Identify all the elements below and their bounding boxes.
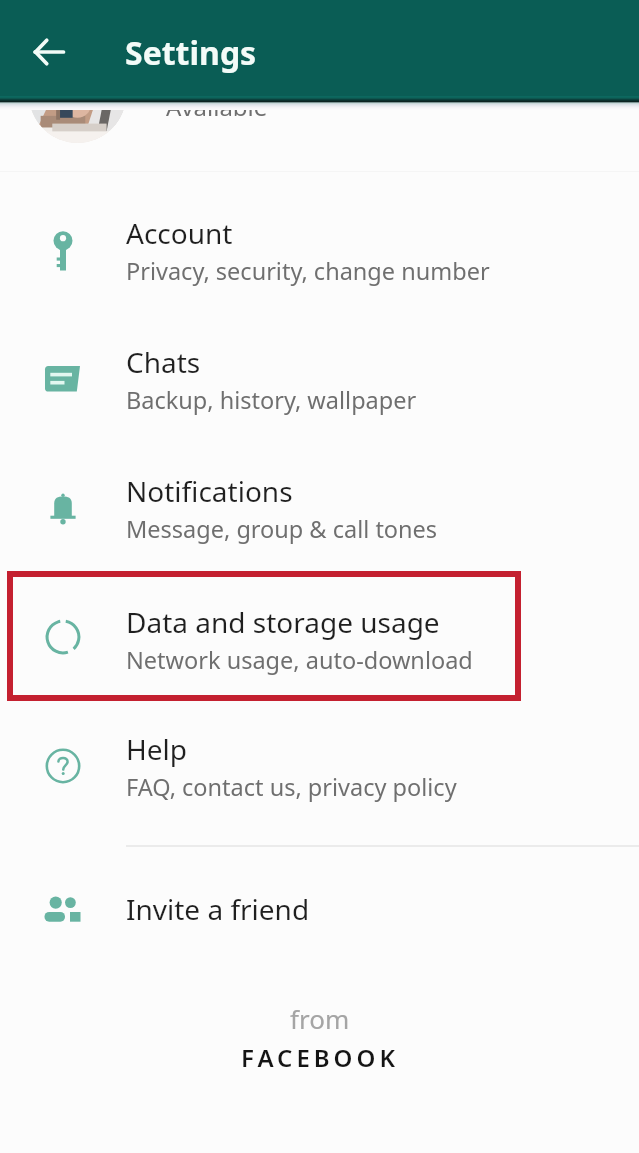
staticText: Available <box>166 90 268 123</box>
staticText: from <box>290 1001 350 1036</box>
staticText: Backup, history, wallpaper <box>126 384 417 416</box>
staticText: Privacy, security, change number <box>126 255 490 287</box>
staticText: FAQ, contact us, privacy policy <box>126 771 457 803</box>
staticText: Settings <box>125 31 257 75</box>
staticText: Message, group & call tones <box>126 513 438 545</box>
button[interactable]: Invite a friend <box>0 866 639 950</box>
button[interactable]: Available <box>0 97 639 171</box>
button[interactable]: Data and storage usage <box>0 589 639 701</box>
staticText: Account <box>126 214 233 252</box>
staticText: Invite a friend <box>126 890 310 928</box>
staticText: Notifications <box>126 472 293 510</box>
staticText: FACEBOOK <box>241 1041 399 1074</box>
staticText: Network usage, auto-download <box>126 644 473 676</box>
staticText: Chats <box>126 343 201 381</box>
button[interactable]: Account <box>0 200 639 312</box>
button[interactable]: Help <box>0 716 639 828</box>
staticText: Help <box>126 730 187 768</box>
staticText: Data and storage usage <box>126 603 440 641</box>
button[interactable]: Notifications <box>0 458 639 570</box>
button[interactable]: Chats <box>0 329 639 441</box>
button[interactable]: Back <box>21 24 77 80</box>
